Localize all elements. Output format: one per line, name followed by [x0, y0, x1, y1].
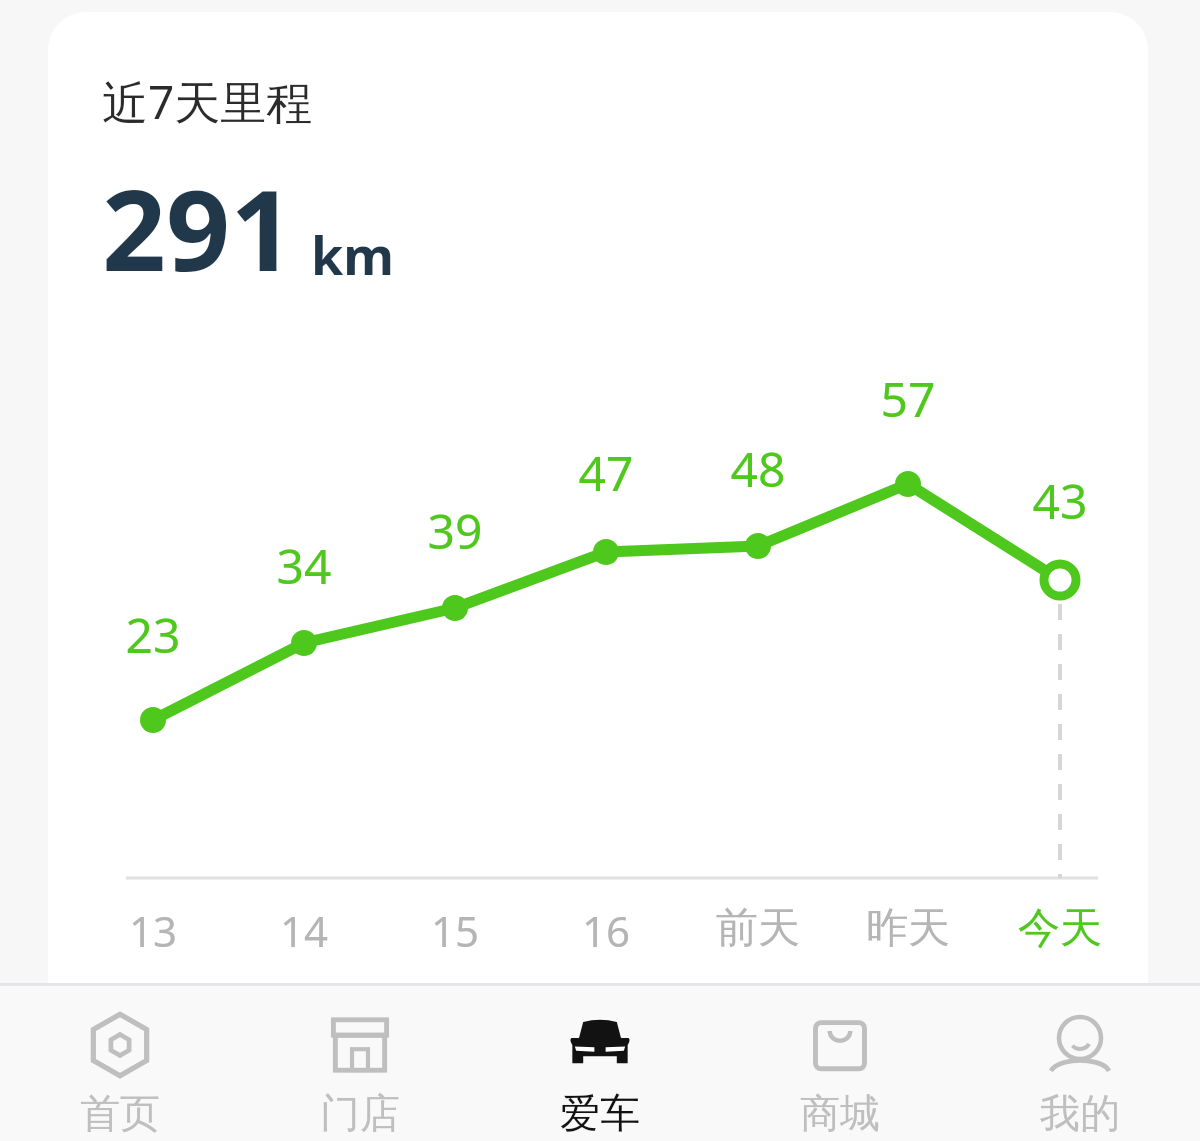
- staticText: 昨天: [838, 902, 978, 955]
- staticText: 近7天里程: [102, 70, 313, 133]
- staticText: 39: [425, 498, 485, 563]
- staticText: 14: [234, 902, 374, 959]
- staticText: 商城: [800, 1088, 880, 1138]
- staticText: 48: [728, 436, 788, 501]
- button[interactable]: 首页: [0, 990, 240, 1138]
- staticText: 57: [878, 366, 938, 431]
- button[interactable]: 近7天里程: [48, 12, 1148, 983]
- staticText: 门店: [320, 1088, 400, 1138]
- button[interactable]: 我的: [960, 990, 1200, 1138]
- staticText: 我的: [1040, 1088, 1120, 1138]
- staticText: km: [311, 219, 394, 290]
- staticText: 16: [536, 902, 676, 959]
- staticText: 47: [576, 440, 636, 505]
- button[interactable]: 门店: [240, 990, 480, 1138]
- staticText: 13: [83, 902, 223, 959]
- staticText: 爱车: [560, 1088, 640, 1138]
- staticText: 34: [274, 533, 334, 598]
- staticText: 首页: [80, 1088, 160, 1138]
- staticText: 今天: [990, 902, 1130, 955]
- button[interactable]: 商城: [720, 990, 960, 1138]
- staticText: 15: [385, 902, 525, 959]
- staticText: 前天: [688, 902, 828, 955]
- staticText: 23: [123, 602, 183, 667]
- button[interactable]: 爱车: [480, 990, 720, 1138]
- staticText: 291: [102, 151, 295, 304]
- staticText: 43: [1030, 468, 1090, 533]
